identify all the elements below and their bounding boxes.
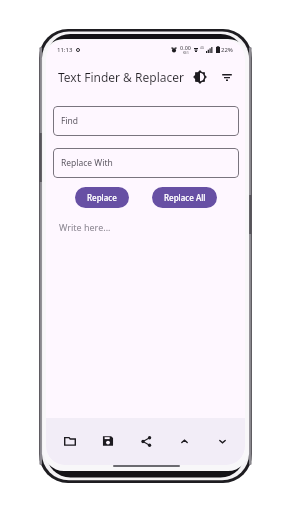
staticText: Find [61, 115, 79, 127]
button[interactable]: Previous [172, 429, 196, 453]
staticText: Replace With [61, 157, 113, 169]
button[interactable]: Share [134, 429, 158, 453]
button[interactable]: Filter [217, 67, 237, 87]
button[interactable]: Replace All [152, 187, 217, 208]
staticText: 22% [221, 46, 233, 54]
staticText: Write here... [59, 221, 111, 233]
button[interactable]: Open folder [58, 429, 82, 453]
staticText: Replace All [164, 192, 206, 203]
staticText: Replace [87, 192, 117, 203]
button[interactable]: Save [96, 429, 120, 453]
button[interactable]: Replace [75, 187, 129, 208]
button[interactable]: Replace With [53, 148, 239, 178]
staticText: Text Finder & Replacer [58, 69, 184, 85]
staticText: 4G [200, 46, 205, 50]
button[interactable]: Toggle theme [190, 67, 210, 87]
staticText: 0.00 [180, 44, 191, 51]
button[interactable]: Find [53, 106, 239, 136]
staticText: 11:13 [57, 46, 73, 54]
staticText: KB/S [183, 51, 189, 55]
button[interactable]: Next [210, 429, 234, 453]
